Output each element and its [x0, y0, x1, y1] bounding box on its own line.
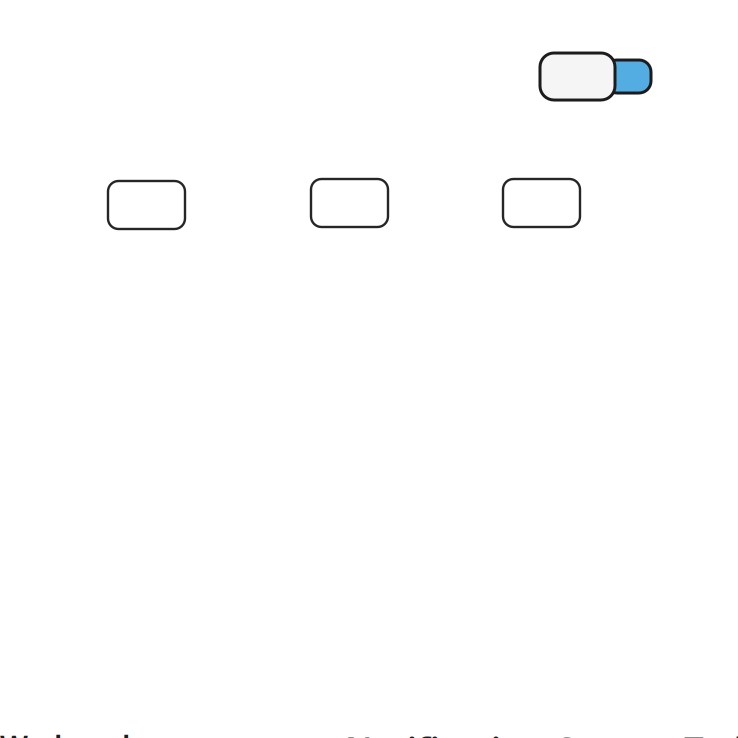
button[interactable]: Blue tab [605, 60, 651, 93]
button[interactable]: Tile 3 [503, 179, 580, 227]
button[interactable]: Tile 2 [311, 179, 388, 227]
button[interactable]: Tile 1 [108, 181, 185, 229]
button[interactable]: Card [540, 53, 615, 100]
staticText: Wednesday [0, 726, 163, 738]
staticText: Notification Center Today Reminders Sett… [345, 726, 738, 738]
